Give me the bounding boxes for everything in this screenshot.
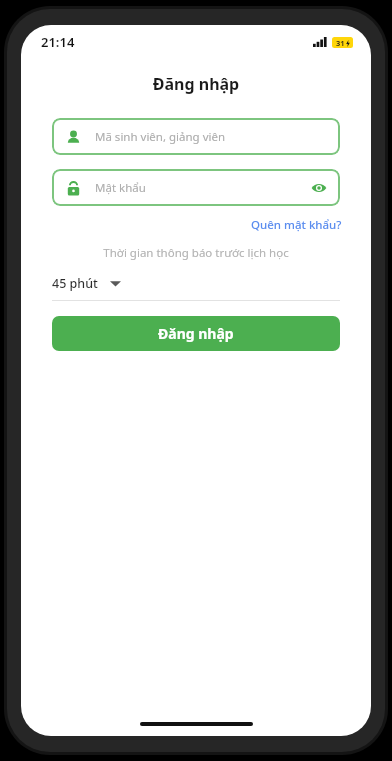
staticText: Đăng nhập xyxy=(158,324,234,343)
staticText: 31 xyxy=(336,38,345,48)
staticText: 45 phút xyxy=(52,275,98,292)
button[interactable]: 45 phút xyxy=(52,272,121,295)
button[interactable]: Password xyxy=(52,169,340,206)
button[interactable]: Đăng nhập xyxy=(52,316,340,351)
staticText: Quên mật khẩu? xyxy=(251,217,342,233)
other: User xyxy=(65,129,81,145)
staticText: Thời gian thông báo trước lịch học xyxy=(21,245,371,261)
button[interactable]: Show password xyxy=(310,179,328,197)
staticText: Đăng nhập xyxy=(21,73,371,95)
staticText: Mã sinh viên, giảng viên xyxy=(95,129,226,145)
button[interactable]: User xyxy=(52,118,340,155)
button[interactable]: Quên mật khẩu? xyxy=(249,215,344,235)
other: Password xyxy=(65,180,81,196)
staticText: Mật khẩu xyxy=(95,180,146,196)
staticText: 21:14 xyxy=(41,33,75,51)
